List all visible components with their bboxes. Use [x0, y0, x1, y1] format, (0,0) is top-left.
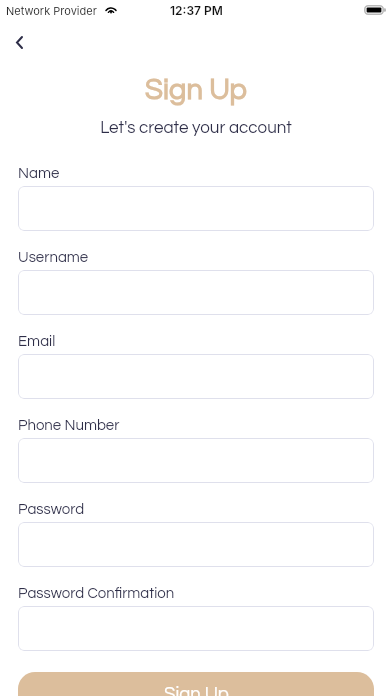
staticText: Sign Up [164, 685, 229, 696]
staticText: 12:37 PM [170, 3, 223, 18]
staticText: Name [18, 166, 60, 181]
staticText: Username [18, 250, 89, 265]
button[interactable]: Sign Up [18, 672, 374, 696]
button[interactable]: Phone Number [18, 438, 374, 483]
button[interactable]: Email [18, 354, 374, 399]
staticText: Network Provider [6, 4, 97, 17]
button[interactable]: Password [18, 522, 374, 567]
staticText: Phone Number [18, 418, 120, 433]
button[interactable]: Password Confirmation [18, 606, 374, 651]
button[interactable]: Back [0, 22, 44, 64]
staticText: Let's create your account [0, 119, 392, 137]
button[interactable]: Name [18, 186, 374, 231]
staticText: Password Confirmation [18, 586, 175, 601]
staticText: Email [18, 334, 56, 349]
button[interactable]: Username [18, 270, 374, 315]
staticText: Sign Up [0, 75, 392, 105]
staticText: Password [18, 502, 85, 517]
